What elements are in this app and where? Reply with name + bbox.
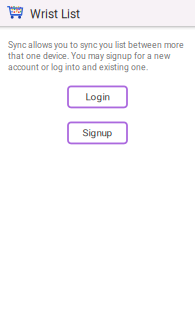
- staticText: Sync allows you to sync you list between…: [8, 40, 184, 72]
- button[interactable]: Login: [68, 86, 127, 107]
- staticText: Signup: [82, 127, 112, 139]
- staticText: Wrist List: [30, 7, 80, 21]
- button[interactable]: Signup: [68, 122, 127, 143]
- staticText: Login: [85, 91, 109, 103]
